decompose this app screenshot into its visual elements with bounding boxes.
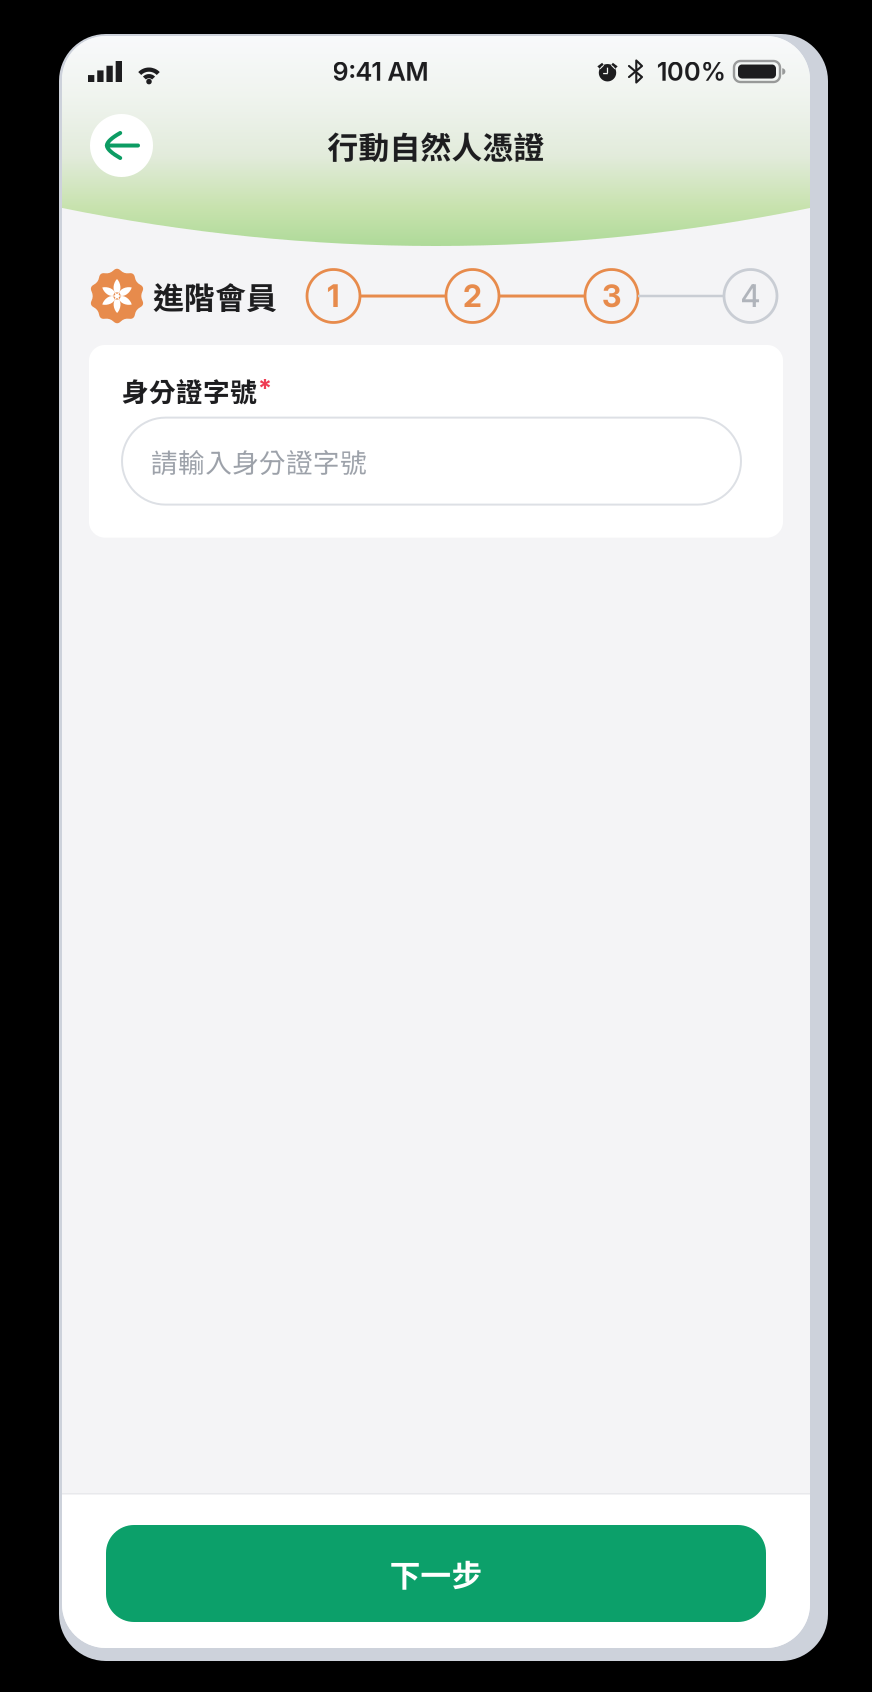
staticText: 9:41 AM	[332, 56, 428, 87]
staticText: *	[258, 373, 272, 404]
staticText: 進階會員	[153, 274, 277, 318]
staticText: 身分證字號	[122, 371, 257, 410]
staticText: 行動自然人憑證	[327, 123, 544, 168]
staticText: 3	[602, 277, 621, 314]
staticText: 下一步	[389, 1551, 482, 1596]
staticText: 請輸入身分證字號	[151, 442, 367, 480]
staticText: 1	[327, 277, 340, 314]
button[interactable]: Back	[90, 114, 153, 177]
staticText: 4	[740, 277, 760, 314]
button[interactable]: 下一步	[106, 1525, 766, 1622]
staticText: 100%	[657, 56, 726, 87]
staticText: 2	[463, 277, 482, 314]
